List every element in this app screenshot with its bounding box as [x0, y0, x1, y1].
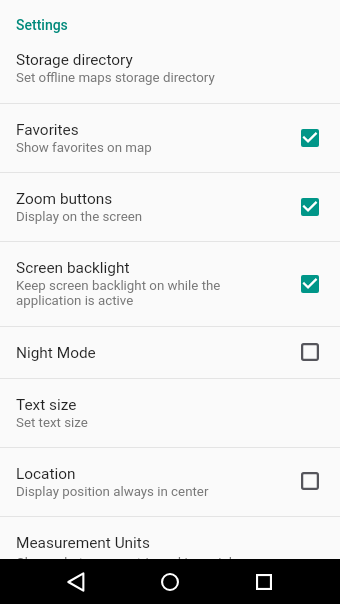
staticText: Text size [16, 396, 77, 414]
staticText: Zoom buttons [16, 190, 113, 208]
button[interactable]: Favorites [0, 104, 340, 172]
staticText: Show favorites on map [16, 140, 276, 155]
staticText: Measurement Units [16, 534, 150, 552]
staticText: Choose between metric and imperial [16, 555, 276, 570]
staticText: Display on the screen [16, 209, 276, 224]
button[interactable]: Night Mode [0, 327, 340, 378]
staticText: Set text size [16, 415, 276, 430]
button[interactable]: Zoom buttons [0, 173, 340, 241]
button[interactable]: Recent apps [240, 563, 288, 600]
staticText: Display position always in center [16, 484, 276, 499]
button[interactable]: Screen backlight [0, 242, 340, 326]
staticText: Keep screen backlight on while the appli… [16, 278, 224, 308]
button[interactable]: Text size [0, 379, 340, 447]
staticText: Night Mode [16, 344, 96, 362]
button[interactable]: Measurement Units [0, 517, 340, 559]
staticText: Storage directory [16, 51, 133, 69]
staticText: Screen backlight [16, 259, 130, 277]
staticText: Location [16, 465, 76, 483]
button[interactable]: Home [146, 563, 194, 600]
button[interactable]: Location [0, 448, 340, 516]
button[interactable]: Storage directory [0, 33, 340, 103]
staticText: Set offline maps storage directory [16, 70, 276, 85]
button[interactable]: Back [52, 563, 100, 600]
staticText: Settings [16, 17, 68, 33]
staticText: Favorites [16, 121, 79, 139]
